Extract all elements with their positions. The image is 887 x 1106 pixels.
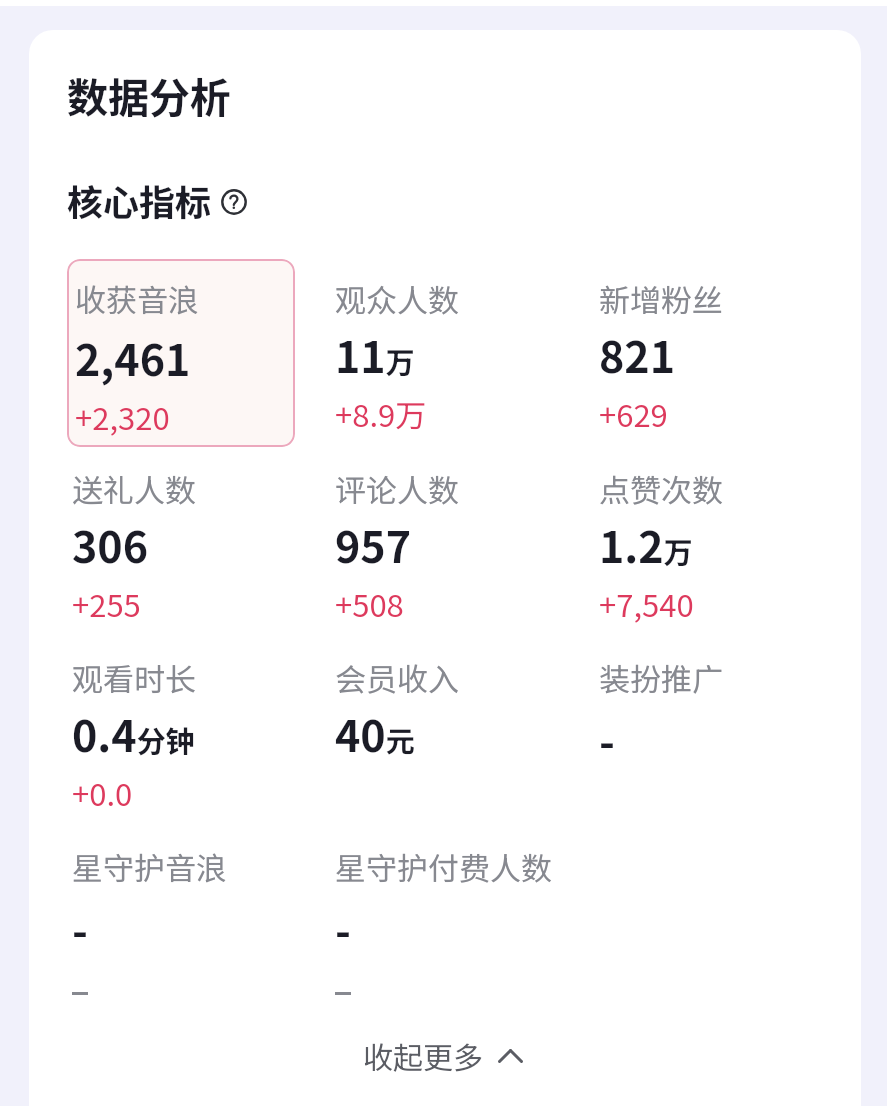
staticText: 40元 [335, 702, 415, 764]
staticText: 核心指标 [67, 174, 212, 226]
staticText: - [72, 897, 88, 959]
staticText: +629 [599, 391, 668, 436]
button[interactable] [330, 826, 566, 1002]
staticText: 957 [335, 513, 412, 575]
staticText: 1.2万 [599, 513, 693, 575]
staticText: 新增粉丝 [599, 276, 723, 321]
staticText: +2,320 [75, 394, 170, 439]
staticText: +0.0 [72, 770, 133, 815]
staticText: 2,461 [75, 326, 191, 388]
staticText: - [599, 708, 615, 770]
staticText: 收获音浪 [75, 276, 199, 321]
staticText: 星守护付费人数 [335, 844, 552, 889]
staticText: +8.9万 [335, 391, 427, 436]
button[interactable] [67, 259, 295, 447]
staticText: +7,540 [599, 581, 694, 626]
staticText: 821 [599, 323, 676, 385]
staticText: 星守护音浪 [72, 844, 227, 889]
staticText: 11万 [335, 323, 415, 385]
button[interactable] [67, 258, 303, 434]
staticText: 观众人数 [335, 276, 459, 321]
staticText: - [335, 897, 351, 959]
button[interactable] [594, 258, 830, 434]
button[interactable] [67, 637, 303, 813]
staticText: 评论人数 [335, 466, 459, 511]
staticText: 306 [72, 513, 149, 575]
staticText: 会员收入 [335, 655, 459, 700]
button[interactable]: 收起更多 [355, 1029, 531, 1082]
staticText: 装扮推广 [599, 655, 723, 700]
staticText: 点赞次数 [599, 466, 723, 511]
staticText: 观看时长 [72, 655, 196, 700]
button[interactable] [330, 448, 566, 624]
staticText: 0.4分钟 [72, 702, 195, 764]
button[interactable]: 帮助说明 [221, 189, 247, 215]
staticText: 数据分析 [67, 65, 231, 124]
button[interactable] [330, 258, 566, 434]
staticText: 送礼人数 [72, 466, 196, 511]
staticText: 收起更多 [363, 1034, 483, 1077]
staticText: +508 [335, 581, 404, 626]
button[interactable] [67, 448, 303, 624]
button[interactable] [594, 637, 830, 813]
button[interactable] [594, 448, 830, 624]
button[interactable] [330, 637, 566, 813]
staticText: +255 [72, 581, 141, 626]
button[interactable] [67, 826, 303, 1002]
